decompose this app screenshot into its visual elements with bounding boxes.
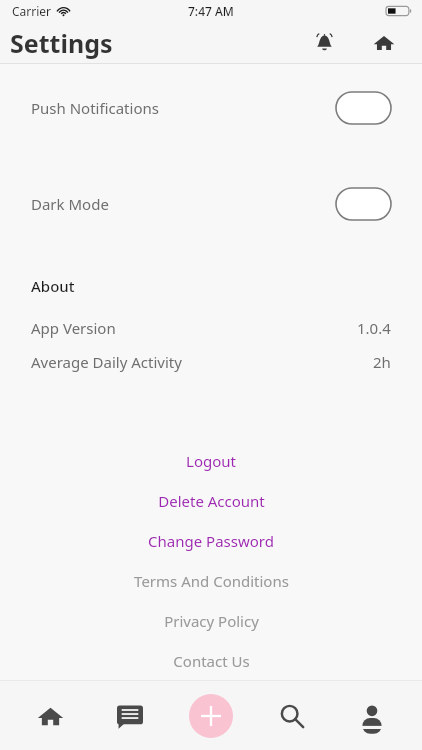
button[interactable]: Home bbox=[19, 685, 81, 747]
button[interactable]: Notifications bbox=[302, 22, 346, 63]
button[interactable]: Contact Us bbox=[0, 641, 422, 681]
button[interactable]: Profile bbox=[341, 685, 403, 747]
button[interactable]: Push Notifications bbox=[0, 88, 422, 128]
button[interactable]: Dark Mode bbox=[0, 184, 422, 224]
staticText: About bbox=[31, 276, 75, 296]
staticText: 2h bbox=[373, 352, 391, 372]
button[interactable]: Logout bbox=[0, 441, 422, 481]
button[interactable]: Add bbox=[180, 685, 242, 747]
staticText: Average Daily Activity bbox=[31, 352, 182, 372]
staticText: Carrier bbox=[12, 3, 52, 19]
button[interactable]: Delete Account bbox=[0, 481, 422, 521]
staticText: Dark Mode bbox=[31, 194, 109, 214]
staticText: Delete Account bbox=[158, 491, 265, 511]
staticText: Contact Us bbox=[173, 651, 250, 671]
staticText: Push Notifications bbox=[31, 98, 159, 118]
button[interactable]: Search bbox=[261, 685, 323, 747]
staticText: Terms And Conditions bbox=[134, 571, 289, 591]
staticText: 7:47 AM bbox=[188, 3, 234, 19]
staticText: Privacy Policy bbox=[164, 611, 259, 631]
staticText: Change Password bbox=[148, 531, 274, 551]
staticText: App Version bbox=[31, 318, 116, 338]
button[interactable]: Messages bbox=[99, 685, 161, 747]
button[interactable]: Home bbox=[362, 22, 406, 63]
staticText: 1.0.4 bbox=[357, 318, 391, 338]
staticText: Settings bbox=[10, 26, 113, 60]
staticText: Logout bbox=[186, 451, 236, 471]
button[interactable]: Change Password bbox=[0, 521, 422, 561]
button[interactable]: Terms And Conditions bbox=[0, 561, 422, 601]
button[interactable]: Privacy Policy bbox=[0, 601, 422, 641]
